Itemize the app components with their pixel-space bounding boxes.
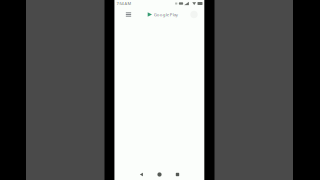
button[interactable]: Back bbox=[135, 169, 148, 180]
staticText: 7:54 AM bbox=[116, 1, 131, 6]
button[interactable]: Account bbox=[187, 7, 200, 22]
button[interactable]: Home bbox=[153, 169, 166, 180]
button[interactable]: Recents bbox=[171, 169, 184, 180]
staticText: Google Play bbox=[154, 12, 178, 17]
button[interactable]: Menu bbox=[121, 7, 135, 22]
